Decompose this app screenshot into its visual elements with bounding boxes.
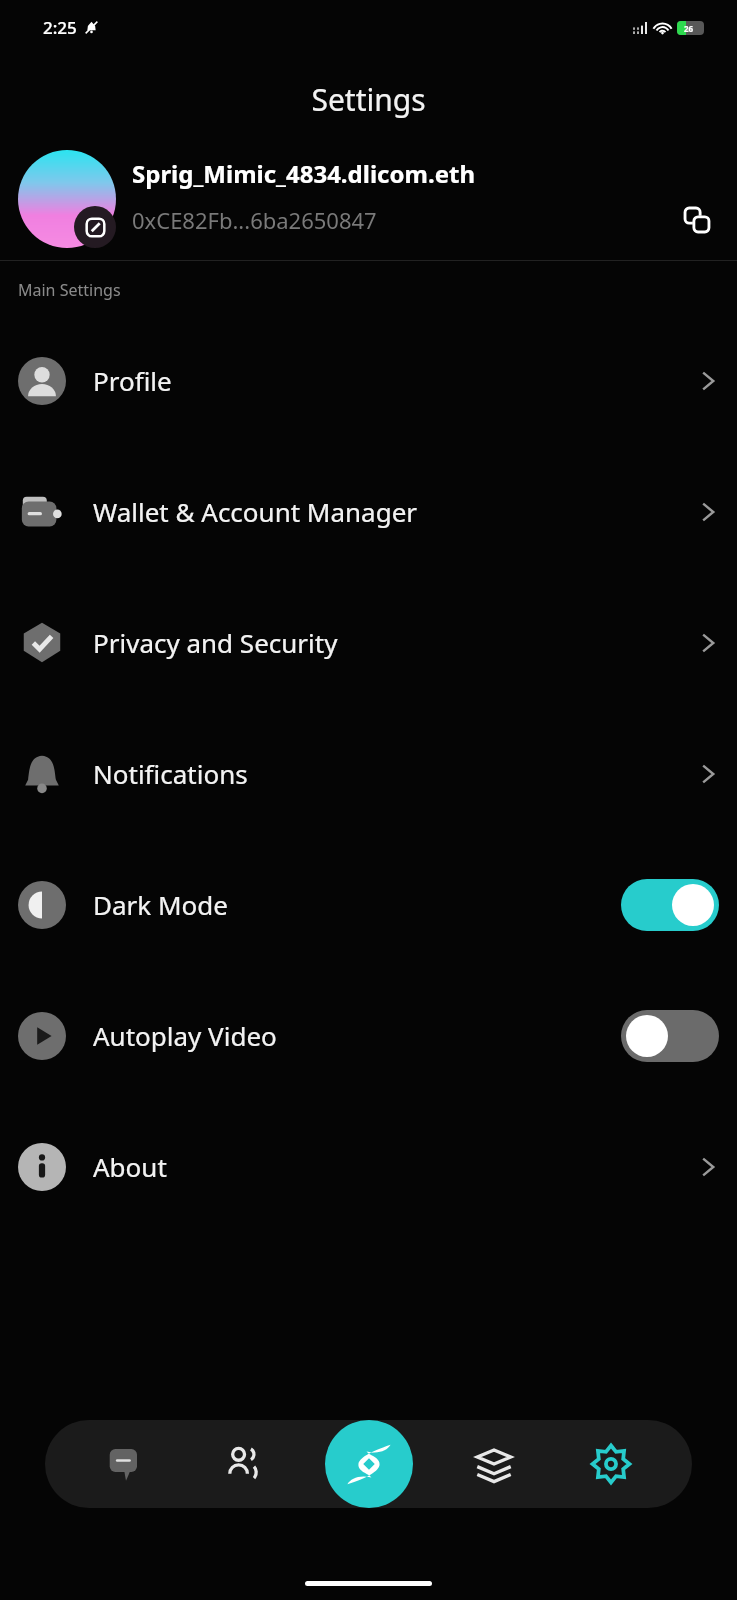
button[interactable]: Contacts bbox=[207, 1428, 279, 1500]
staticText: Notifications bbox=[93, 756, 248, 791]
staticText: Autoplay Video bbox=[93, 1018, 277, 1053]
button[interactable]: Settings bbox=[575, 1428, 647, 1500]
staticText: 2:25 bbox=[43, 16, 77, 39]
staticText: Profile bbox=[93, 363, 172, 398]
staticText: 26 bbox=[684, 23, 694, 34]
button[interactable]: Dark Mode bbox=[0, 839, 737, 970]
staticText: 0xCE82Fb...6ba2650847 bbox=[132, 205, 377, 235]
staticText: Main Settings bbox=[18, 279, 121, 301]
button[interactable]: Edit avatar bbox=[74, 206, 116, 248]
staticText: Privacy and Security bbox=[93, 625, 338, 660]
staticText: About bbox=[93, 1149, 167, 1184]
staticText: Dark Mode bbox=[93, 887, 228, 922]
button[interactable]: Dark Mode bbox=[621, 879, 719, 931]
button[interactable]: Notifications bbox=[0, 708, 737, 839]
button[interactable]: Privacy and Security bbox=[0, 577, 737, 708]
button[interactable]: Avatar bbox=[18, 150, 116, 248]
button[interactable]: Layers bbox=[458, 1428, 530, 1500]
button[interactable]: Profile bbox=[0, 315, 737, 446]
button[interactable]: About bbox=[0, 1101, 737, 1232]
staticText: Sprig_Mimic_4834.dlicom.eth bbox=[132, 157, 475, 190]
button[interactable]: Copy address bbox=[675, 198, 719, 242]
button[interactable]: Autoplay Video bbox=[0, 970, 737, 1101]
staticText: Settings bbox=[0, 79, 737, 120]
button[interactable]: Chat bbox=[90, 1428, 162, 1500]
button[interactable]: Autoplay Video bbox=[621, 1010, 719, 1062]
button[interactable]: Home bbox=[325, 1420, 413, 1508]
button[interactable]: Wallet & Account Manager bbox=[0, 446, 737, 577]
staticText: Wallet & Account Manager bbox=[93, 494, 418, 529]
